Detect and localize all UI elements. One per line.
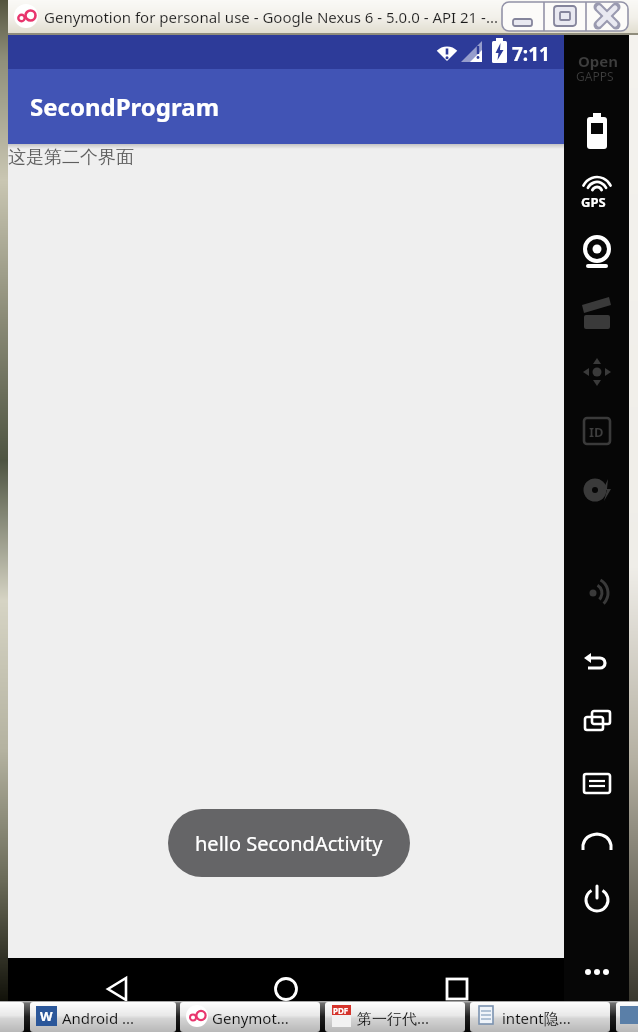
button[interactable] xyxy=(437,958,477,1001)
button[interactable] xyxy=(574,109,620,153)
staticText: PDF xyxy=(333,1005,349,1016)
button[interactable]: W xyxy=(30,1002,176,1032)
staticText: Genymot... xyxy=(212,1008,289,1028)
staticText: Android ... xyxy=(62,1008,135,1028)
staticText: 这是第二个界面 xyxy=(8,146,134,169)
button[interactable] xyxy=(574,173,620,217)
button[interactable] xyxy=(544,2,586,31)
staticText: Open xyxy=(578,51,619,71)
button[interactable] xyxy=(574,350,620,394)
button[interactable] xyxy=(574,878,620,922)
button[interactable] xyxy=(574,701,620,745)
button[interactable] xyxy=(266,958,306,1001)
button[interactable]: PDF xyxy=(325,1002,465,1032)
button[interactable]: hello SecondActivity xyxy=(168,809,410,877)
staticText: W xyxy=(40,1007,53,1025)
button[interactable] xyxy=(586,2,628,31)
staticText: GPS xyxy=(581,193,606,211)
button[interactable] xyxy=(574,820,620,864)
staticText: Genymotion for personal use - Google Nex… xyxy=(44,7,498,27)
staticText: hello SecondActivity xyxy=(195,830,383,857)
staticText: GAPPS xyxy=(576,68,614,84)
button[interactable] xyxy=(574,291,620,335)
button[interactable] xyxy=(574,468,620,512)
button[interactable] xyxy=(574,409,620,453)
button[interactable] xyxy=(574,640,620,684)
button[interactable] xyxy=(0,1002,24,1032)
button[interactable]: intent隐... xyxy=(470,1002,610,1032)
staticText: intent隐... xyxy=(502,1008,571,1028)
button[interactable]: Genymot... xyxy=(180,1002,320,1032)
staticText: SecondProgram xyxy=(30,90,220,123)
button[interactable] xyxy=(574,564,620,608)
button[interactable] xyxy=(98,958,138,1001)
staticText: ID xyxy=(589,423,604,441)
button[interactable] xyxy=(574,950,620,994)
button[interactable] xyxy=(616,1002,638,1032)
staticText: 7:11 xyxy=(512,41,550,67)
staticText: 第一行代... xyxy=(357,1008,430,1028)
button[interactable] xyxy=(574,230,620,274)
button[interactable] xyxy=(502,2,544,31)
button[interactable] xyxy=(574,761,620,805)
